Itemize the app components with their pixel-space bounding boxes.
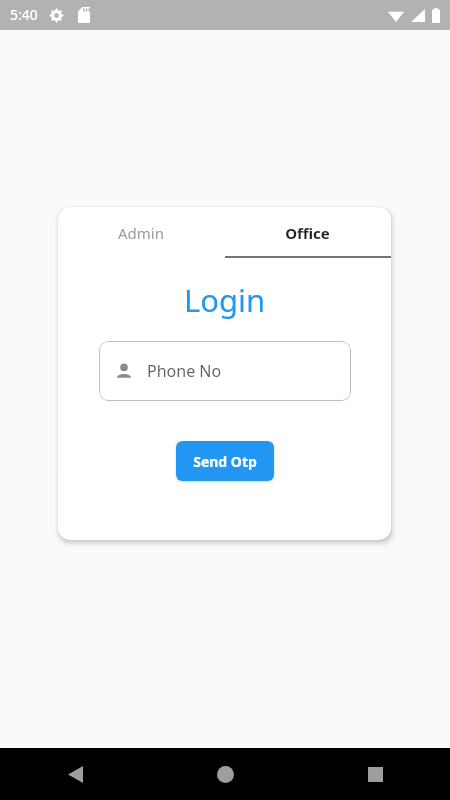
button[interactable]: Send Otp <box>176 441 274 481</box>
button[interactable]: Home <box>150 748 300 800</box>
staticText: 5:40 <box>10 5 38 24</box>
staticText: Send Otp <box>193 452 257 471</box>
staticText: Phone No <box>147 360 222 382</box>
button[interactable]: Recent apps <box>300 748 450 800</box>
button[interactable]: Phone No <box>99 341 351 401</box>
button[interactable]: Back <box>0 748 150 800</box>
staticText: Admin <box>118 223 164 243</box>
staticText: Login <box>58 279 391 321</box>
button[interactable]: Admin <box>58 207 224 259</box>
staticText: Office <box>285 223 330 243</box>
button[interactable]: Office <box>224 207 391 259</box>
